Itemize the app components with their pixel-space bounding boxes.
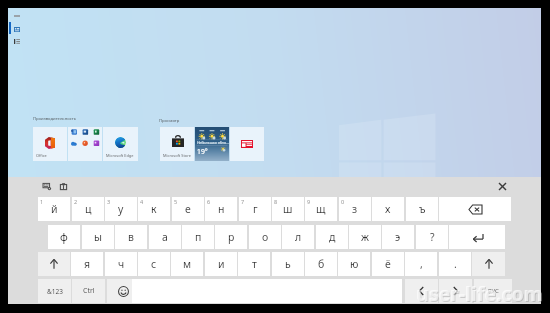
button[interactable]: 2 — [72, 197, 104, 221]
staticText: ч — [118, 257, 125, 271]
staticText: Microsoft Store — [163, 153, 191, 158]
button[interactable]: д — [316, 225, 348, 249]
staticText: а — [162, 230, 168, 244]
staticText: 2 — [74, 198, 78, 205]
button[interactable]: Backspace — [439, 197, 511, 221]
staticText: 3 — [107, 198, 111, 205]
button[interactable]: 3 — [105, 197, 137, 221]
button[interactable]: ё — [372, 252, 404, 276]
staticText: ъ — [419, 202, 426, 216]
staticText: Microsoft Edge — [106, 153, 134, 158]
staticText: з — [352, 202, 358, 216]
staticText: 6 — [207, 198, 211, 205]
button[interactable]: т — [238, 252, 270, 276]
button[interactable]: Clipboard — [60, 183, 67, 190]
staticText: Office — [36, 153, 47, 158]
staticText: Ctrl — [83, 286, 95, 296]
button[interactable]: 9 — [305, 197, 337, 221]
button[interactable]: Enter — [449, 225, 505, 249]
staticText: 0 — [341, 198, 345, 205]
button[interactable] — [68, 127, 102, 161]
staticText: user-life.com — [417, 281, 544, 308]
button[interactable]: в — [115, 225, 147, 249]
button[interactable]: . — [439, 252, 471, 276]
staticText: ю — [350, 257, 359, 271]
button[interactable]: 6 — [205, 197, 237, 221]
button[interactable]: Ctrl — [72, 279, 105, 303]
staticText: , — [420, 257, 423, 271]
staticText: л — [295, 230, 302, 244]
button[interactable]: Microsoft Store — [160, 127, 194, 161]
button[interactable]: и — [205, 252, 237, 276]
staticText: ш — [283, 202, 293, 216]
button[interactable]: с — [138, 252, 170, 276]
button[interactable]: ы — [82, 225, 114, 249]
button[interactable]: Shift — [472, 252, 505, 276]
staticText: й — [51, 202, 58, 216]
button[interactable]: п — [182, 225, 214, 249]
button[interactable]: ж — [349, 225, 381, 249]
button[interactable]: я — [71, 252, 103, 276]
button[interactable]: Office — [33, 127, 67, 161]
staticText: т — [252, 257, 257, 271]
button[interactable]: 7 — [239, 197, 271, 221]
button[interactable]: 1 — [38, 197, 70, 221]
button[interactable]: ъ — [406, 197, 438, 221]
button[interactable]: , — [405, 252, 437, 276]
button[interactable]: &123 — [38, 279, 71, 303]
button[interactable]: Pictures — [14, 27, 20, 32]
button[interactable]: ? — [416, 225, 448, 249]
button[interactable]: 5 — [172, 197, 204, 221]
staticText: ж — [361, 230, 369, 244]
button[interactable]: м — [171, 252, 203, 276]
staticText: . — [454, 257, 457, 271]
staticText: и — [218, 257, 225, 271]
button[interactable]: л — [282, 225, 314, 249]
staticText: ь — [285, 257, 291, 271]
button[interactable]: Shift — [38, 252, 70, 276]
button[interactable]: э — [382, 225, 414, 249]
button[interactable]: Left — [405, 279, 438, 303]
button[interactable]: Небольшая обла... — [195, 127, 229, 161]
staticText: е — [185, 202, 191, 216]
staticText: р — [228, 230, 235, 244]
staticText: ц — [85, 202, 92, 216]
button[interactable]: х — [372, 197, 404, 221]
button[interactable]: Keyboard settings — [43, 183, 51, 190]
button[interactable]: Microsoft Edge — [103, 127, 138, 161]
button[interactable]: р — [215, 225, 247, 249]
button[interactable]: ф — [48, 225, 80, 249]
staticText: 1 — [40, 198, 44, 205]
staticText: ф — [60, 230, 68, 244]
button[interactable]: 8 — [272, 197, 304, 221]
staticText: ё — [385, 257, 391, 271]
staticText: 7 — [241, 198, 245, 205]
button[interactable]: ч — [105, 252, 137, 276]
button[interactable]: ь — [272, 252, 304, 276]
staticText: Просмотр — [159, 118, 180, 124]
staticText: РУС — [488, 287, 499, 295]
button[interactable]: ю — [338, 252, 370, 276]
button[interactable]: List — [14, 39, 20, 44]
staticText: о — [262, 230, 269, 244]
staticText: б — [318, 257, 325, 271]
button[interactable]: РУС — [474, 279, 512, 303]
staticText: к — [151, 202, 157, 216]
button[interactable]: Emoji — [107, 279, 139, 303]
staticText: ы — [94, 230, 102, 244]
button[interactable]: о — [249, 225, 281, 249]
button[interactable]: 4 — [138, 197, 170, 221]
staticText: Небольшая обла... — [197, 140, 229, 145]
staticText: 4 — [140, 198, 144, 205]
button[interactable]: а — [149, 225, 181, 249]
button[interactable] — [230, 127, 264, 161]
button[interactable]: 0 — [339, 197, 371, 221]
staticText: н — [218, 202, 225, 216]
button[interactable]: б — [305, 252, 337, 276]
button[interactable]: Close keyboard — [496, 180, 509, 193]
staticText: ? — [430, 230, 435, 244]
staticText: 8 — [274, 198, 278, 205]
button[interactable]: Right — [439, 279, 472, 303]
